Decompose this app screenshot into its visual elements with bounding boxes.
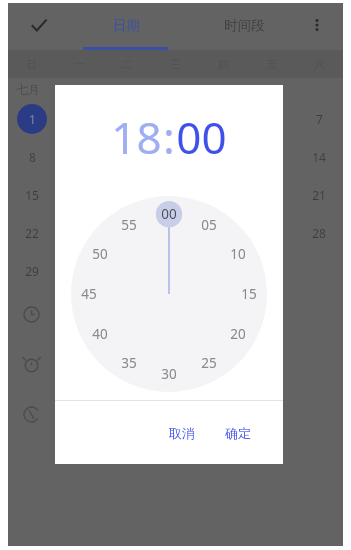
staticText: 50 <box>92 245 108 263</box>
staticText: 29 <box>25 263 39 279</box>
staticText: 21 <box>312 187 326 203</box>
staticText: 取消 <box>169 425 195 441</box>
button[interactable]: 28 <box>304 218 334 248</box>
staticText: 七月 <box>16 82 40 97</box>
button[interactable]: 日期 <box>68 3 185 47</box>
staticText: 1 <box>29 111 36 127</box>
button[interactable]: 00 <box>176 107 227 167</box>
staticText: 30 <box>161 365 177 383</box>
button[interactable]: 50 <box>87 241 113 267</box>
staticText: 10 <box>230 245 246 263</box>
button[interactable]: Clock <box>11 294 51 334</box>
button[interactable]: 35 <box>116 350 142 376</box>
staticText: 55 <box>121 216 137 234</box>
staticText: 18 <box>111 107 162 167</box>
button[interactable]: 45 <box>76 281 102 307</box>
staticText: : <box>163 107 175 167</box>
button[interactable]: 05 <box>196 212 222 238</box>
button[interactable]: More options <box>301 9 333 41</box>
button[interactable]: 取消 <box>159 418 205 448</box>
button[interactable]: Alarm <box>11 344 51 384</box>
staticText: 8 <box>29 149 36 165</box>
staticText: 40 <box>92 325 108 343</box>
staticText: 05 <box>201 216 217 234</box>
staticText: 25 <box>201 354 217 372</box>
staticText: 00 <box>161 205 177 223</box>
staticText: 15 <box>241 285 257 303</box>
button[interactable]: 15 <box>236 281 262 307</box>
staticText: 28 <box>312 225 326 241</box>
button[interactable]: 00 <box>156 201 182 227</box>
button[interactable]: Confirm <box>22 8 56 42</box>
staticText: 45 <box>81 285 97 303</box>
button[interactable]: 21 <box>304 180 334 210</box>
button[interactable]: 1 <box>17 104 47 134</box>
staticText: 20 <box>230 325 246 343</box>
staticText: 35 <box>121 354 137 372</box>
button[interactable]: 30 <box>156 361 182 387</box>
staticText: 00 <box>176 107 227 167</box>
button[interactable]: 7 <box>304 104 334 134</box>
button[interactable]: 确定 <box>215 418 261 448</box>
button[interactable]: 10 <box>225 241 251 267</box>
button[interactable]: 22 <box>17 218 47 248</box>
button[interactable]: 29 <box>17 256 47 286</box>
button[interactable]: 40 <box>87 321 113 347</box>
button[interactable]: Sync <box>11 394 51 434</box>
button[interactable]: 14 <box>304 142 334 172</box>
staticText: 14 <box>312 149 326 165</box>
button[interactable]: 15 <box>17 180 47 210</box>
button[interactable]: 8 <box>17 142 47 172</box>
staticText: 确定 <box>225 425 251 441</box>
button[interactable]: 25 <box>196 350 222 376</box>
staticText: 五 <box>266 58 277 71</box>
button[interactable]: 时间段 <box>185 3 303 47</box>
staticText: 15 <box>25 187 39 203</box>
staticText: 22 <box>25 225 39 241</box>
button[interactable]: 20 <box>225 321 251 347</box>
staticText: 时间段 <box>224 17 265 34</box>
staticText: 四 <box>218 58 229 71</box>
button[interactable]: 55 <box>116 212 142 238</box>
staticText: 7 <box>316 111 323 127</box>
staticText: 日期 <box>113 17 140 34</box>
button[interactable]: 18 <box>111 107 162 167</box>
staticText: 日 <box>26 58 37 71</box>
